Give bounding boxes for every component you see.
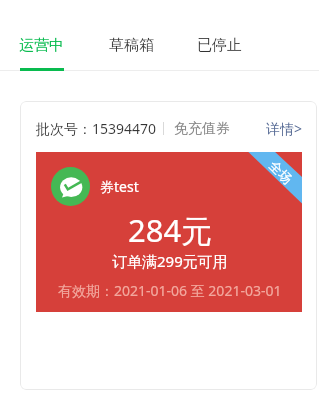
button[interactable]: 已停止	[182, 24, 257, 67]
staticText: 免充值券	[174, 120, 230, 138]
staticText: 券test	[100, 177, 139, 196]
button[interactable]: 详情>	[264, 114, 305, 143]
button[interactable]: 批次号：15394470	[20, 101, 317, 390]
staticText: 已停止	[197, 36, 242, 55]
button[interactable]: 草稿箱	[94, 24, 169, 67]
staticText: 草稿箱	[109, 36, 154, 55]
staticText: 284元	[128, 209, 213, 251]
staticText: 运营中	[19, 36, 64, 55]
button[interactable]: 全场	[36, 152, 302, 312]
staticText: 订单满299元可用	[112, 251, 228, 271]
staticText: 有效期：2021-01-06 至 2021-03-01	[58, 281, 282, 300]
button[interactable]: 运营中	[4, 24, 79, 67]
staticText: 全场	[266, 157, 296, 187]
staticText: 详情>	[266, 119, 303, 138]
staticText: 批次号：15394470	[36, 119, 157, 138]
